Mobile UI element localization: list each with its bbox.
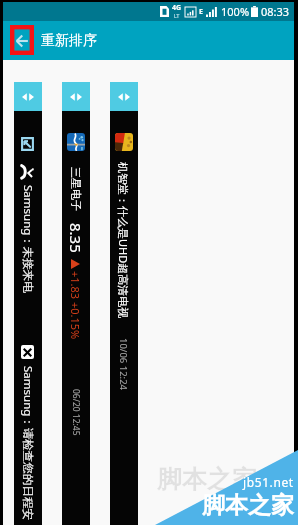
staticText: jb51.net (243, 474, 294, 490)
staticText: E (199, 7, 203, 17)
button[interactable]: Reorder (62, 82, 90, 111)
button[interactable]: 机智堂：什么是UHD超高清电视 (110, 111, 138, 525)
staticText: 8.35 (66, 223, 86, 253)
button[interactable]: Reorder (14, 82, 42, 111)
staticText: Samsung：未接来电 (20, 185, 36, 293)
staticText: 重新排序 (41, 32, 97, 50)
staticText: 脚本之家 (202, 491, 294, 520)
button[interactable]: Reorder (110, 82, 138, 111)
button[interactable]: 三星电子 (62, 111, 90, 525)
staticText: 4G (172, 3, 182, 13)
staticText: 06/20 12:45 (70, 389, 82, 436)
staticText: 三星电子 (69, 167, 83, 211)
button[interactable]: Back (10, 26, 34, 56)
staticText: +1.83 +0.15% (68, 271, 83, 340)
button[interactable]: Samsung：未接来电 (14, 111, 42, 525)
staticText: Samsung：请检查您的日程安排 (20, 366, 36, 525)
staticText: LT (174, 13, 180, 20)
staticText: 脚本之家 (157, 464, 257, 495)
staticText: 机智堂：什么是UHD超高清电视 (116, 162, 131, 319)
staticText: 100% (221, 4, 250, 19)
staticText: 10/06 12:24 (117, 338, 130, 391)
staticText: 08:33 (261, 4, 290, 19)
